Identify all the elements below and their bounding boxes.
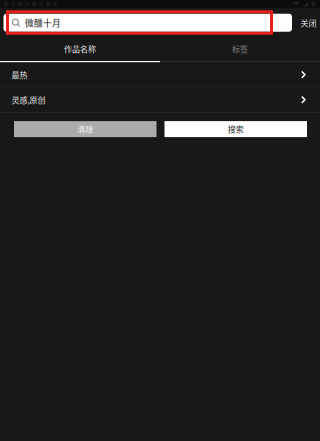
staticText: 灵感,原创 [11,94,45,106]
button[interactable]: 搜索 [164,121,307,137]
button[interactable]: 标签 [160,43,320,62]
button[interactable]: 关闭 [296,12,320,34]
staticText: 最热 [11,69,27,80]
staticText: 关闭 [300,17,316,29]
button[interactable]: 作品名称 [0,43,160,62]
button[interactable]: 清除 [14,121,156,137]
staticText: 作品名称 [64,43,96,55]
staticText: 清除 [77,123,93,135]
staticText: 搜索 [228,123,244,135]
button[interactable]: 最热 [0,62,320,87]
staticText: 微醺十月 [25,16,61,29]
staticText: 标签 [232,43,248,55]
button[interactable]: 灵感,原创 [0,87,320,113]
